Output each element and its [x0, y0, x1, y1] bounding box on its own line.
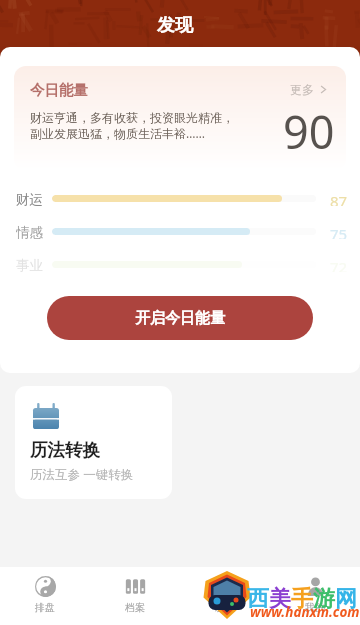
staticText: 游	[313, 585, 335, 613]
staticText: 事业	[16, 257, 43, 272]
staticText: 今日能量	[30, 81, 88, 99]
staticText: 开启今日能量	[135, 309, 225, 328]
staticText: 发现	[215, 601, 235, 614]
staticText: 72	[330, 257, 348, 272]
staticText: 网	[335, 585, 357, 613]
button[interactable]: 发现	[180, 567, 270, 625]
staticText: 我的	[305, 601, 325, 614]
button[interactable]: 更多	[288, 81, 329, 98]
staticText: 75	[330, 224, 348, 239]
button[interactable]: 我的	[270, 567, 360, 625]
staticText: www.hanxm.com	[250, 603, 360, 621]
staticText: 档案	[125, 601, 145, 614]
staticText: 情感	[16, 224, 43, 239]
staticText: 90	[283, 101, 335, 162]
staticText: 手	[291, 585, 313, 613]
staticText: 美	[269, 585, 291, 613]
staticText: 财运	[16, 191, 43, 206]
staticText: 财运亨通，多有收获，投资眼光精准，	[30, 110, 234, 125]
staticText: 更多	[290, 82, 314, 97]
staticText: 历法互参 一键转换	[30, 466, 134, 483]
staticText: 历法转换	[30, 439, 100, 461]
button[interactable]: 历法转换	[15, 386, 172, 499]
button[interactable]: 排盘	[0, 567, 90, 625]
button[interactable]: 开启今日能量	[47, 296, 313, 340]
staticText: 87	[330, 191, 348, 206]
staticText: 西	[247, 585, 269, 613]
staticText: 发现	[157, 14, 193, 37]
button[interactable]: 档案	[90, 567, 180, 625]
staticText: 排盘	[35, 601, 55, 614]
staticText: 副业发展迅猛，物质生活丰裕……	[30, 125, 205, 141]
